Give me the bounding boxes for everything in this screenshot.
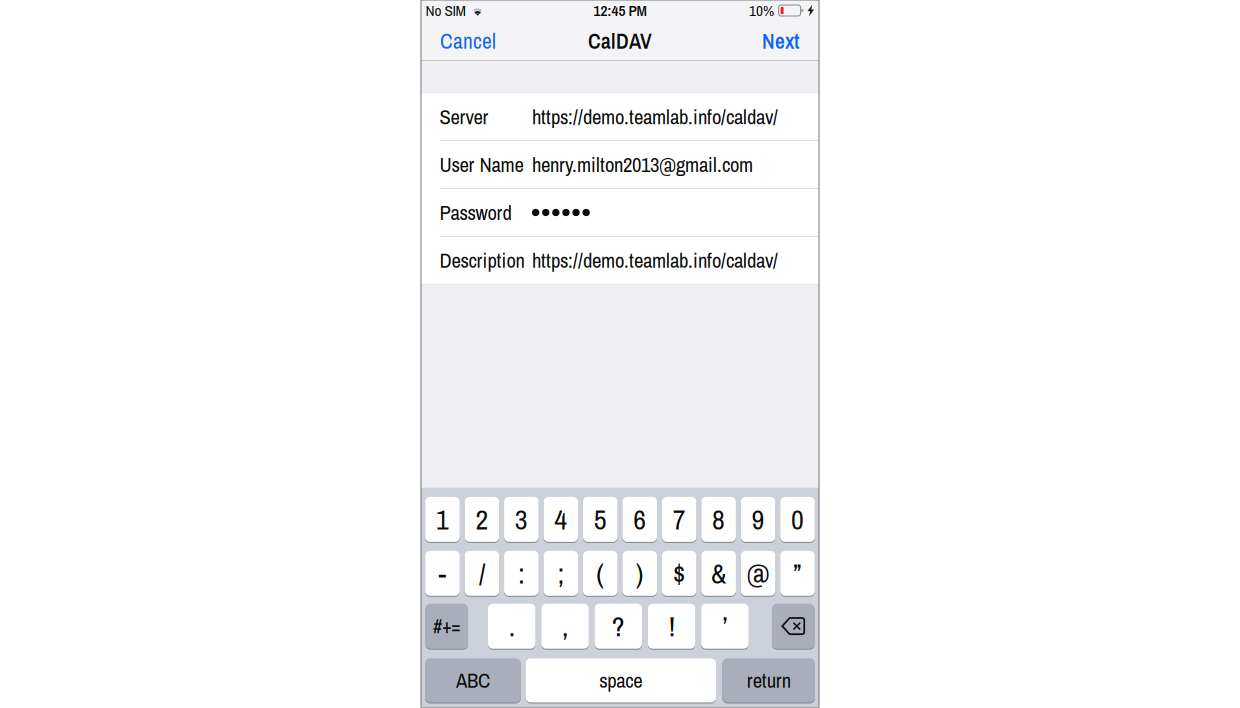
staticText: ’ [722,607,727,645]
button[interactable]: 9 [741,497,775,543]
button[interactable]: & [701,551,736,597]
staticText: https://demo.teamlab.info/caldav/ [532,103,778,131]
button[interactable]: 5 [583,497,618,543]
button[interactable]: 7 [662,497,696,543]
staticText: 4 [554,500,567,538]
button[interactable]: ) [622,551,657,597]
staticText: ? [612,607,625,645]
staticText: , [562,607,568,645]
staticText: ” [793,554,801,592]
button[interactable]: Next [752,21,819,61]
button[interactable]: 3 [504,497,539,543]
staticText: . [509,607,515,645]
button[interactable]: Server [421,93,819,140]
staticText: https://demo.teamlab.info/caldav/ [532,246,778,274]
button[interactable]: , [541,604,589,650]
button[interactable]: ’ [701,604,749,650]
button[interactable]: : [504,551,539,597]
staticText: ) [636,554,644,592]
staticText: Next [762,27,800,55]
staticText: 6 [633,500,646,538]
button[interactable]: ( [583,551,618,597]
staticText: Description [439,246,524,274]
staticText: space [599,666,642,694]
button[interactable]: return [722,658,815,703]
button[interactable]: space [526,658,716,703]
staticText: 12:45 PM [593,0,646,21]
button[interactable]: - [425,551,460,597]
staticText: Password [439,199,511,226]
button[interactable]: ? [594,604,642,650]
staticText: ! [669,607,675,645]
button[interactable]: 0 [780,497,815,543]
staticText: Server [439,103,488,131]
button[interactable]: ABC [425,658,521,703]
staticText: No SIM [425,0,465,21]
button[interactable]: #+= [425,604,468,650]
staticText: 0 [791,500,804,538]
button[interactable]: 1 [425,497,460,543]
staticText: 3 [515,500,528,538]
staticText: CalDAV [588,27,652,55]
button[interactable]: Delete [772,604,815,650]
staticText: 2 [475,500,488,538]
button[interactable]: 2 [465,497,499,543]
staticText: / [479,554,485,592]
button[interactable]: 8 [701,497,736,543]
staticText: 8 [712,500,725,538]
staticText: 9 [752,500,765,538]
button[interactable]: @ [741,551,775,597]
button[interactable]: User Name [421,141,819,188]
staticText: $ [673,554,686,592]
staticText: Cancel [440,27,496,55]
staticText: #+= [433,613,460,639]
staticText: ( [596,554,604,592]
staticText: - [438,554,446,592]
staticText: 10% [749,0,774,21]
button[interactable]: 4 [543,497,578,543]
button[interactable]: Description [421,237,819,284]
button[interactable]: / [465,551,499,597]
button[interactable]: . [488,604,535,650]
staticText: @ [747,554,770,592]
staticText: 5 [594,500,607,538]
staticText: User Name [439,151,523,178]
button[interactable]: ; [543,551,578,597]
button[interactable]: Password [421,189,819,236]
staticText: & [711,554,726,592]
button[interactable]: 6 [622,497,657,543]
button[interactable]: Cancel [421,21,506,61]
staticText: ; [558,554,564,592]
staticText: return [747,666,791,694]
staticText: : [518,554,524,592]
button[interactable]: ! [648,604,695,650]
staticText: 7 [673,500,686,538]
staticText: henry.milton2013@gmail.com [532,151,753,178]
button[interactable]: ” [780,551,815,597]
button[interactable]: $ [662,551,696,597]
staticText: 1 [436,500,449,538]
staticText: ABC [456,666,490,694]
